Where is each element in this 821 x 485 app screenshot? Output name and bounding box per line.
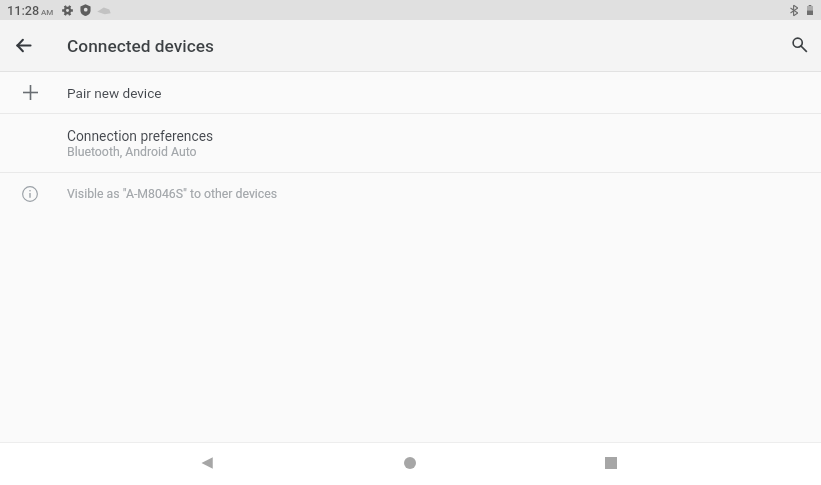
button[interactable]: Recent apps — [587, 441, 635, 484]
staticText: Bluetooth, Android Auto — [67, 145, 197, 159]
staticText: AM — [41, 8, 54, 17]
staticText: 11:28 — [7, 3, 40, 18]
button[interactable]: Back — [183, 441, 231, 484]
button[interactable]: Home — [386, 441, 434, 484]
button[interactable]: Connection preferences — [0, 114, 821, 172]
staticText: Connected devices — [67, 36, 215, 56]
button[interactable]: Back — [7, 29, 39, 61]
button[interactable]: Search — [783, 28, 815, 60]
staticText: Connection preferences — [67, 128, 214, 144]
button[interactable]: Pair new device — [0, 72, 821, 113]
staticText: Pair new device — [67, 85, 162, 101]
staticText: Visible as "A-M8046S" to other devices — [67, 187, 278, 201]
